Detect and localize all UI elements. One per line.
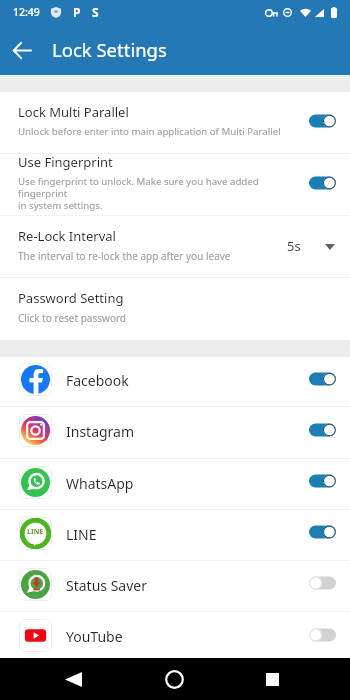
staticText: P [73, 4, 81, 20]
staticText: Unlock before enter into main applicatio… [18, 125, 281, 138]
staticText: Lock Multi Parallel [18, 103, 129, 121]
button[interactable]: Back [1, 29, 43, 71]
staticText: Password Setting [18, 289, 124, 307]
button[interactable]: LINE [0, 510, 350, 560]
staticText: Use fingerprint to unlock. Make sure you… [18, 175, 307, 212]
staticText: 12:49 [13, 5, 40, 19]
staticText: 5s [287, 237, 301, 255]
staticText: YouTube [66, 627, 309, 646]
staticText: S [92, 4, 99, 20]
button[interactable]: Home [151, 658, 197, 700]
button[interactable]: Status Saver [0, 561, 350, 611]
button[interactable]: Back [50, 658, 96, 700]
button[interactable]: Recent apps [249, 658, 295, 700]
button[interactable]: Facebook [0, 357, 350, 406]
button[interactable]: Use Fingerprint [0, 154, 350, 215]
button[interactable]: Password Setting [0, 278, 350, 340]
button[interactable]: WhatsApp [0, 459, 350, 509]
staticText: Facebook [66, 371, 309, 390]
staticText: LINE [27, 527, 44, 537]
staticText: Status Saver [66, 576, 309, 595]
button[interactable]: YouTube [0, 612, 350, 663]
staticText: The interval to re-lock the app after yo… [18, 249, 231, 263]
staticText: LINE [66, 525, 309, 544]
staticText: Re-Lock Interval [18, 227, 116, 245]
button[interactable]: Instagram [0, 407, 350, 458]
staticText: Lock Settings [52, 37, 167, 62]
button[interactable]: Re-Lock Interval [0, 216, 350, 277]
button[interactable]: Lock Multi Parallel [0, 92, 350, 153]
staticText: Instagram [66, 422, 309, 441]
staticText: Click to reset password [18, 311, 127, 325]
staticText: WhatsApp [66, 474, 309, 493]
staticText: Use Fingerprint [18, 153, 113, 171]
